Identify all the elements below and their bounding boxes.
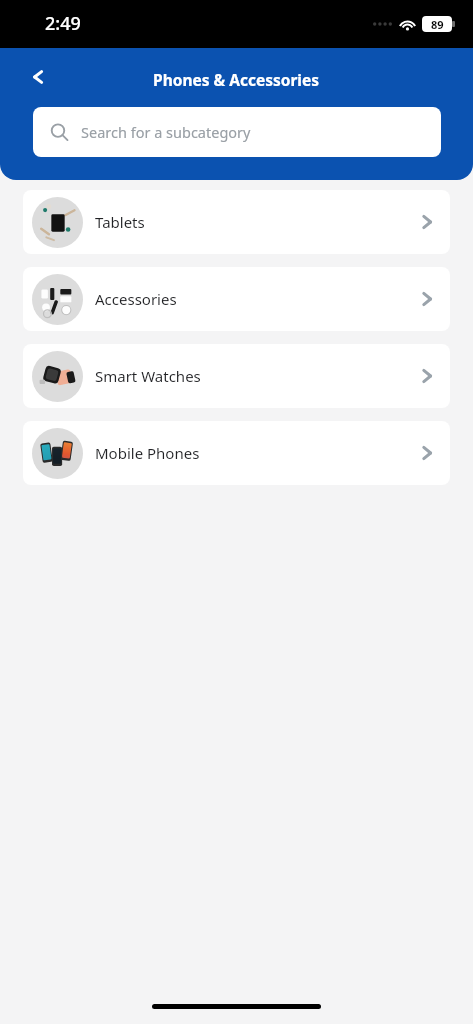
- button[interactable]: Back: [18, 57, 58, 97]
- staticText: 2:49: [45, 11, 81, 36]
- staticText: Search for a subcategory: [81, 122, 251, 142]
- staticText: Tablets: [95, 212, 145, 232]
- button[interactable]: Smart Watches: [23, 344, 450, 408]
- staticText: Smart Watches: [95, 366, 201, 386]
- button[interactable]: Tablets: [23, 190, 450, 254]
- staticText: Mobile Phones: [95, 443, 200, 463]
- button[interactable]: Mobile Phones: [23, 421, 450, 485]
- button[interactable]: Search for a subcategory: [33, 107, 441, 157]
- staticText: Accessories: [95, 289, 177, 309]
- staticText: 89: [431, 17, 444, 32]
- staticText: Phones & Accessories: [153, 69, 320, 90]
- button[interactable]: Accessories: [23, 267, 450, 331]
